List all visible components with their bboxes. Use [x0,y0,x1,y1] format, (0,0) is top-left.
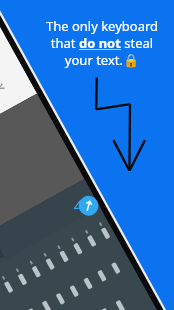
other: Arrow pointing down to keyboard [0,0,174,310]
button[interactable] [0,0,174,310]
staticText: The only keyboard that do not steal your… [34,17,170,69]
